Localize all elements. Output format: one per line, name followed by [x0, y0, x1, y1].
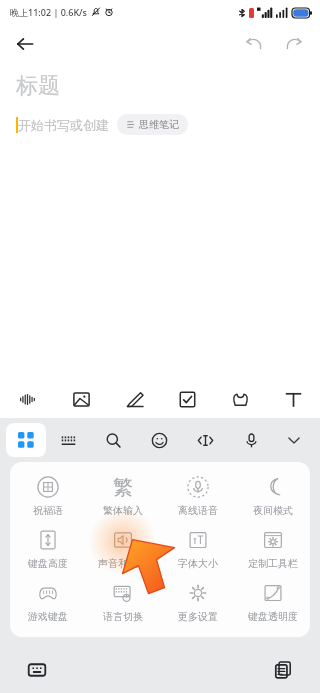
staticText: 键盘透明度: [248, 610, 298, 623]
button[interactable]: 游戏键盘: [10, 578, 85, 625]
button[interactable]: Clipboard: [268, 655, 298, 685]
button[interactable]: Voice: [0, 380, 54, 418]
button[interactable]: Checklist: [161, 380, 214, 418]
staticText: 定制工具栏: [248, 557, 298, 570]
staticText: 语言切换: [103, 610, 143, 623]
button[interactable]: Pen: [108, 380, 161, 418]
button[interactable]: Search: [91, 418, 136, 462]
button[interactable]: Text: [267, 380, 320, 418]
button[interactable]: Style: [214, 380, 267, 418]
button[interactable]: Emoji: [136, 418, 182, 462]
staticText: 夜间模式: [253, 504, 293, 517]
button[interactable]: Voice: [228, 418, 274, 462]
staticText: 离线语音: [178, 504, 218, 517]
button[interactable]: 定制工具栏: [235, 525, 310, 572]
button[interactable]: Undo: [238, 28, 270, 60]
staticText: 声音和振动: [98, 557, 148, 570]
button[interactable]: 离线语音: [160, 472, 235, 519]
staticText: 键盘高度: [28, 557, 68, 570]
button[interactable]: 繁: [85, 472, 160, 519]
staticText: 思维笔记: [139, 118, 179, 131]
button[interactable]: Collapse: [274, 418, 314, 462]
staticText: 晚上11:02 | 0.6K/s: [10, 6, 87, 18]
button[interactable]: Image: [54, 380, 108, 418]
staticText: 标题: [16, 72, 60, 100]
staticText: 开始书写或创建: [18, 117, 109, 133]
button[interactable]: Back: [8, 27, 42, 61]
button[interactable]: 更多设置: [160, 578, 235, 625]
button[interactable]: Redo: [278, 28, 310, 60]
staticText: 繁: [113, 475, 133, 500]
button[interactable]: 语言切换: [85, 578, 160, 625]
staticText: 祝福语: [33, 504, 63, 517]
button[interactable]: 键盘高度: [10, 525, 85, 572]
button[interactable]: Move cursor: [182, 418, 228, 462]
button[interactable]: Keyboard: [22, 655, 52, 685]
button[interactable]: Keyboard: [46, 418, 91, 462]
button[interactable]: 思维笔记: [117, 114, 188, 135]
button[interactable]: 祝福语: [10, 472, 85, 519]
staticText: 繁体输入: [103, 504, 143, 517]
button[interactable]: 键盘透明度: [235, 578, 310, 625]
button[interactable]: 夜间模式: [235, 472, 310, 519]
staticText: 游戏键盘: [28, 610, 68, 623]
staticText: 更多设置: [178, 610, 218, 623]
button[interactable]: 声音和振动: [85, 525, 160, 572]
button[interactable]: 字体大小: [160, 525, 235, 572]
button[interactable]: Panel: [6, 423, 46, 457]
staticText: 字体大小: [178, 557, 218, 570]
